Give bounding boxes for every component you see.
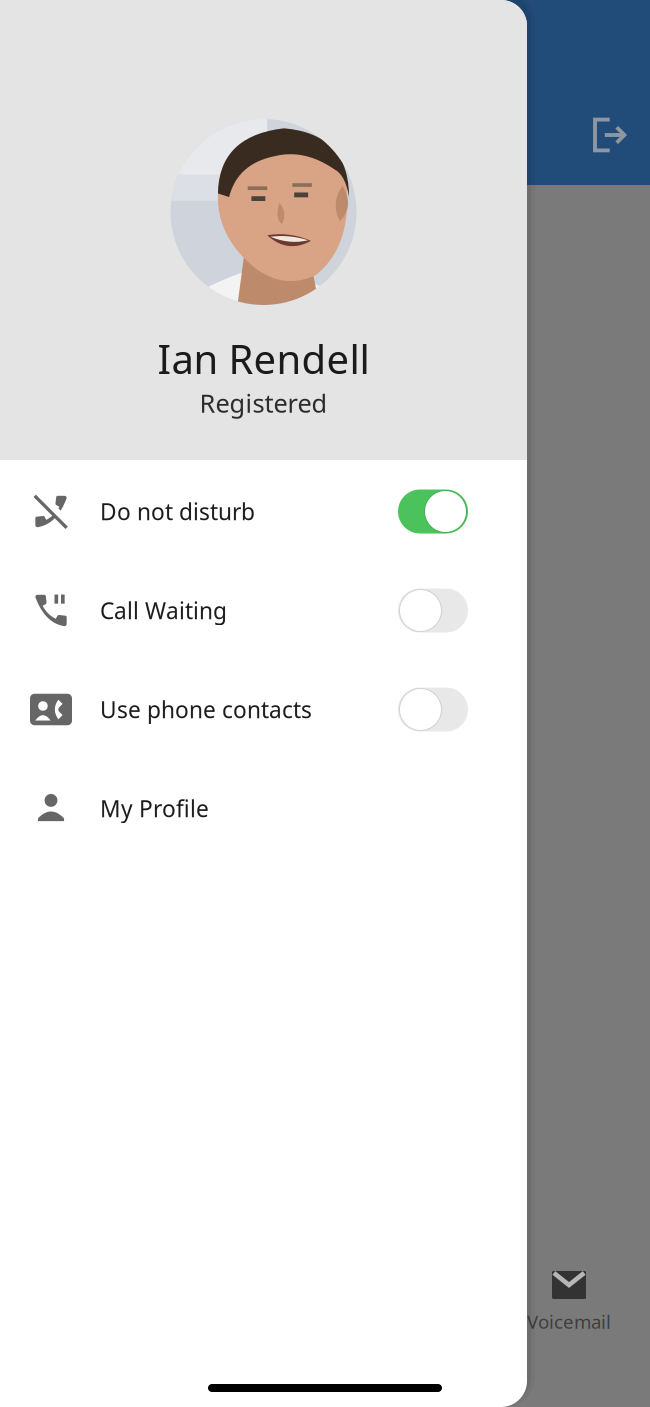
button[interactable]: Voicemail bbox=[489, 1271, 649, 1367]
button[interactable]: Call Waiting bbox=[0, 561, 527, 660]
button[interactable]: Do not disturb bbox=[0, 462, 527, 561]
button[interactable]: Use phone contacts bbox=[0, 660, 527, 759]
button[interactable]: Log out bbox=[572, 98, 646, 172]
staticText: Use phone contacts bbox=[100, 694, 312, 724]
button[interactable]: My Profile bbox=[0, 759, 527, 858]
staticText: My Profile bbox=[100, 793, 209, 823]
staticText: Ian Rendell bbox=[157, 332, 369, 385]
staticText: Voicemail bbox=[527, 1309, 611, 1334]
staticText: Do not disturb bbox=[100, 496, 255, 526]
staticText: Registered bbox=[199, 386, 327, 420]
staticText: Call Waiting bbox=[100, 595, 227, 625]
